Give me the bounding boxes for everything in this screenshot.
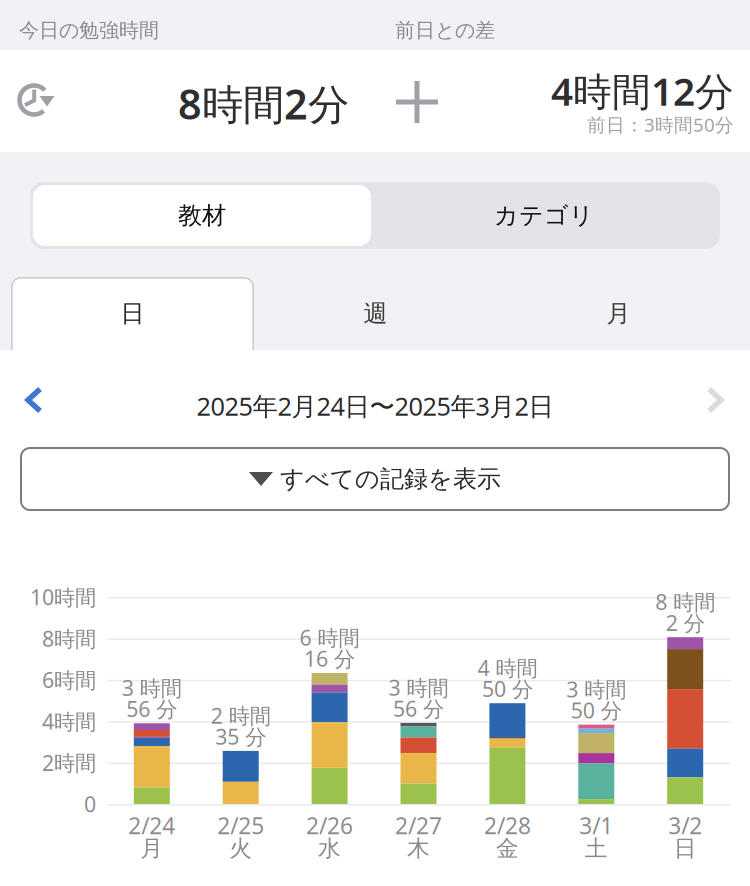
staticText: 2 分 — [666, 608, 705, 637]
staticText: 日 — [674, 835, 697, 862]
staticText: 水 — [318, 835, 341, 862]
staticText: 2/28 — [484, 810, 531, 840]
staticText: 8時間 — [42, 624, 96, 652]
staticText: 2 時間 — [211, 701, 271, 729]
staticText: 3 時間 — [122, 674, 182, 702]
staticText: 8 時間 — [655, 587, 715, 616]
staticText: 2/27 — [395, 810, 442, 840]
staticText: 土 — [585, 835, 608, 862]
staticText: カテゴリ — [494, 201, 594, 230]
staticText: 月 — [140, 835, 163, 862]
staticText: 3 時間 — [388, 673, 448, 701]
staticText: 前日：3時間50分 — [587, 112, 734, 137]
button[interactable]: カテゴリ — [371, 185, 717, 246]
staticText: 2時間 — [42, 748, 96, 777]
staticText: 木 — [407, 835, 430, 862]
staticText: 2/26 — [306, 810, 353, 840]
staticText: すべての記録を表示 — [280, 464, 501, 494]
button[interactable]: Next week — [684, 369, 746, 431]
staticText: 56 分 — [393, 694, 444, 722]
button[interactable]: Add record — [387, 72, 447, 132]
staticText: 今日の勉強時間 — [19, 18, 159, 43]
staticText: 6時間 — [42, 666, 96, 694]
button[interactable]: Previous week — [3, 369, 65, 431]
staticText: 週 — [363, 299, 387, 328]
button[interactable]: History — [10, 74, 66, 130]
staticText: 56 分 — [126, 695, 177, 723]
staticText: 教材 — [178, 201, 226, 230]
staticText: 35 分 — [215, 722, 266, 750]
staticText: 4 時間 — [477, 653, 537, 682]
staticText: 10時間 — [30, 583, 96, 611]
button[interactable]: すべての記録を表示 — [21, 448, 729, 510]
staticText: 金 — [496, 835, 519, 862]
staticText: 月 — [606, 299, 630, 328]
staticText: 前日との差 — [395, 18, 495, 43]
staticText: 6 時間 — [300, 623, 360, 652]
staticText: 4時間 — [42, 707, 96, 735]
staticText: 3 時間 — [566, 675, 626, 703]
staticText: 2/24 — [128, 810, 175, 840]
button[interactable]: 月 — [497, 277, 740, 350]
staticText: 16 分 — [304, 644, 355, 673]
staticText: 8時間2分 — [178, 76, 349, 131]
staticText: 4時間12分 — [551, 65, 734, 116]
staticText: 2025年2月24日〜2025年3月2日 — [196, 389, 553, 423]
staticText: 0 — [84, 790, 96, 818]
button[interactable]: 教材 — [33, 185, 371, 246]
staticText: 日 — [120, 299, 144, 328]
staticText: 2/25 — [217, 810, 264, 840]
button[interactable]: 日 — [11, 277, 254, 350]
staticText: 50 分 — [482, 674, 533, 703]
staticText: 火 — [229, 835, 252, 862]
button[interactable]: 週 — [254, 277, 497, 350]
staticText: 50 分 — [571, 696, 622, 724]
staticText: 3/2 — [668, 810, 702, 840]
staticText: 3/1 — [579, 810, 613, 840]
